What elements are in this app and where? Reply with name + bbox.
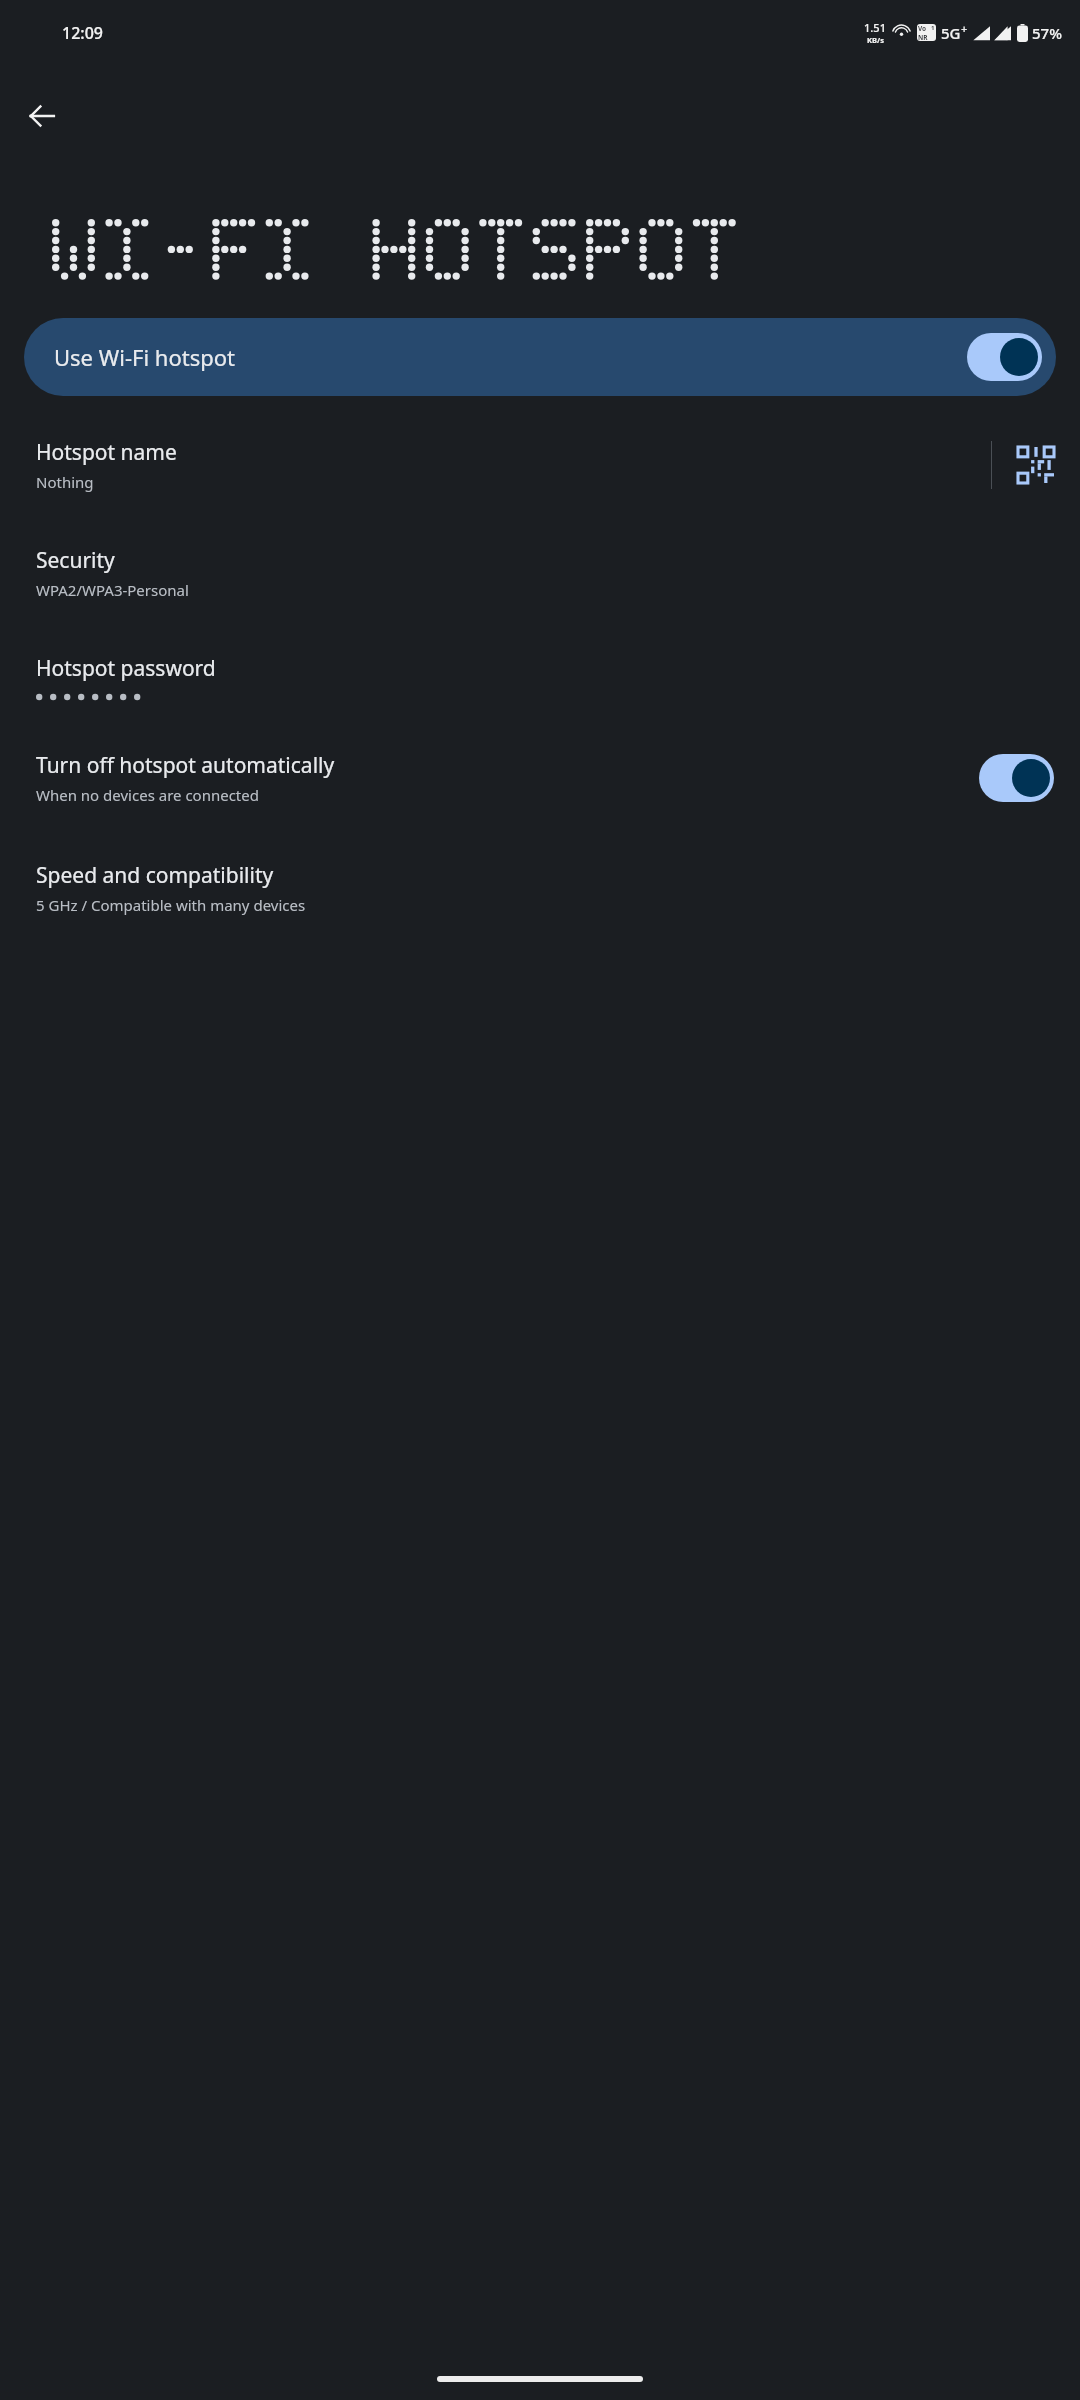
button[interactable]: Back	[14, 88, 70, 144]
staticText: Turn off hotspot automatically	[36, 751, 335, 780]
staticText: +	[961, 21, 968, 36]
button[interactable]: Turn off hotspot automatically	[0, 735, 1080, 821]
button[interactable]: Speed and compatibility	[0, 843, 1080, 933]
staticText: 1.51	[864, 20, 886, 35]
staticText: Vo	[918, 24, 927, 33]
staticText: 5G	[941, 23, 961, 43]
staticText: Security	[36, 546, 115, 575]
button[interactable]: Use Wi-Fi hotspot	[24, 318, 1056, 396]
staticText: When no devices are connected	[36, 785, 259, 805]
staticText: 5 GHz / Compatible with many devices	[36, 895, 306, 915]
staticText: Nothing	[36, 472, 94, 492]
staticText: 12:09	[62, 22, 103, 44]
button[interactable]: Security	[0, 528, 1080, 618]
button[interactable]: Share hotspot QR code	[992, 425, 1080, 505]
staticText: NR	[918, 33, 928, 41]
button[interactable]: Hotspot password	[0, 636, 1080, 719]
staticText: Use Wi-Fi hotspot	[54, 342, 967, 372]
staticText: KB/s	[867, 35, 884, 45]
staticText: Speed and compatibility	[36, 861, 274, 890]
button[interactable]: Hotspot name	[0, 422, 991, 508]
staticText: Hotspot name	[36, 438, 177, 467]
staticText: Hotspot password	[36, 654, 216, 683]
staticText: WPA2/WPA3-Personal	[36, 580, 189, 600]
staticText: 1	[931, 24, 935, 32]
staticText: 57%	[1032, 23, 1062, 43]
